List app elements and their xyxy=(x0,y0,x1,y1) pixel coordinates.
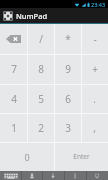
staticText: * xyxy=(65,32,71,46)
staticText: . xyxy=(93,92,96,106)
button[interactable]: 4 xyxy=(0,84,27,113)
button[interactable]: Display xyxy=(86,171,108,180)
staticText: - xyxy=(93,32,97,46)
button[interactable]: Backspace xyxy=(0,24,27,54)
button[interactable]: * xyxy=(54,24,81,54)
button[interactable]: + xyxy=(81,54,108,84)
staticText: 2 xyxy=(38,121,44,135)
staticText: 0 xyxy=(24,151,30,163)
button[interactable]: 3 xyxy=(54,113,81,142)
button[interactable]: Recents xyxy=(64,171,86,180)
staticText: / xyxy=(39,32,43,46)
button[interactable]: , xyxy=(81,113,108,142)
staticText: 4 xyxy=(11,92,17,106)
staticText: 3 xyxy=(65,121,71,135)
button[interactable]: Home xyxy=(42,171,64,180)
button[interactable]: 5 xyxy=(27,84,54,113)
staticText: 6 xyxy=(65,92,71,106)
button[interactable]: 2 xyxy=(27,113,54,142)
button[interactable]: Enter xyxy=(54,142,108,171)
button[interactable]: 7 xyxy=(0,54,27,84)
button[interactable]: 0 xyxy=(0,142,54,171)
button[interactable]: . xyxy=(81,84,108,113)
button[interactable]: - xyxy=(81,24,108,54)
staticText: 1 xyxy=(11,121,17,135)
staticText: 8 xyxy=(38,62,44,76)
button[interactable]: 9 xyxy=(54,54,81,84)
button[interactable]: 8 xyxy=(27,54,54,84)
button[interactable]: 6 xyxy=(54,84,81,113)
staticText: 5 xyxy=(38,92,44,106)
button[interactable]: Back xyxy=(21,171,42,180)
button[interactable]: / xyxy=(27,24,54,54)
staticText: 7 xyxy=(11,62,17,76)
button[interactable]: Keyboard xyxy=(0,171,21,180)
staticText: NumPad xyxy=(16,11,48,21)
staticText: Enter xyxy=(73,152,90,161)
staticText: , xyxy=(93,121,96,135)
staticText: 23:43 xyxy=(91,1,106,8)
staticText: 9 xyxy=(65,62,71,76)
staticText: + xyxy=(92,62,98,76)
button[interactable]: 1 xyxy=(0,113,27,142)
